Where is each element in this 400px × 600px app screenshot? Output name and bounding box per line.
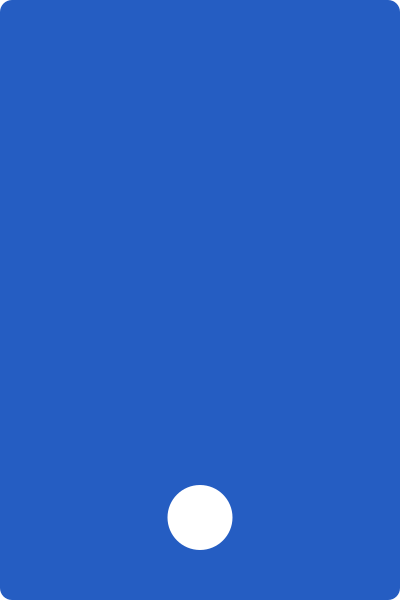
button[interactable]: Continue <box>167 485 232 550</box>
